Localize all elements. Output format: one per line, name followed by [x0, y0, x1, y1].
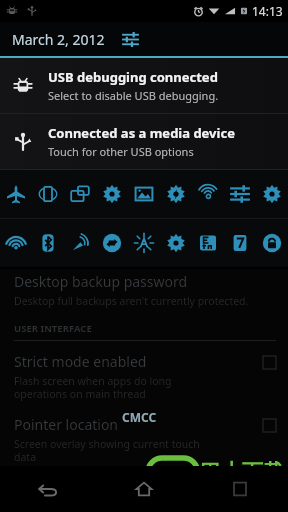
button[interactable]: Toggle 16	[192, 219, 224, 267]
button[interactable]: Toggle 10	[0, 219, 32, 267]
staticText: Flash screen when apps do long operation…	[14, 374, 172, 401]
button[interactable]: Strict mode checkbox	[263, 356, 276, 369]
button[interactable]: Quick settings	[117, 26, 143, 52]
button[interactable]: Toggle 4	[96, 170, 128, 218]
button[interactable]: Toggle 9	[256, 170, 288, 218]
staticText: Screen overlay showing current touch dat…	[14, 437, 200, 464]
staticText: CMCC	[122, 409, 157, 425]
button[interactable]: Toggle 2	[32, 170, 64, 218]
button[interactable]: Toggle 18	[256, 219, 288, 267]
staticText: Connected as a media device	[48, 124, 235, 142]
button[interactable]: Connected as a media device	[0, 114, 288, 169]
button[interactable]: Pointer location checkbox	[263, 419, 276, 432]
button[interactable]: USB debugging connected	[0, 58, 288, 113]
button[interactable]: Toggle 17	[224, 219, 256, 267]
staticText: USER INTERFACE	[14, 322, 92, 335]
staticText: USB debugging connected	[48, 68, 218, 86]
button[interactable]: Toggle 12	[64, 219, 96, 267]
staticText: www.11684.com	[187, 487, 284, 503]
staticText: 巴士下载	[200, 459, 284, 485]
button[interactable]: Toggle 7	[192, 170, 224, 218]
staticText: Strict mode enabled	[14, 352, 147, 371]
button[interactable]: Toggle 1	[0, 170, 32, 218]
button[interactable]: Toggle 15	[160, 219, 192, 267]
button[interactable]: Toggle 8	[224, 170, 256, 218]
staticText: Touch for other USB options	[48, 144, 194, 159]
staticText: Select to disable USB debugging.	[48, 88, 219, 103]
staticText: Pointer location	[14, 415, 119, 434]
staticText: Desktop backup password	[14, 272, 188, 291]
button[interactable]: Toggle 11	[32, 219, 64, 267]
button[interactable]: Home	[96, 466, 192, 512]
staticText: Desktop full backups aren't currently pr…	[14, 294, 249, 308]
button[interactable]: Toggle 14	[128, 219, 160, 267]
button[interactable]: Toggle 3	[64, 170, 96, 218]
staticText: March 2, 2012	[12, 30, 105, 49]
button[interactable]: Recents	[192, 466, 288, 512]
button[interactable]: Toggle 5	[128, 170, 160, 218]
button[interactable]: Toggle 6	[160, 170, 192, 218]
button[interactable]: Toggle 13	[96, 219, 128, 267]
button[interactable]: Back	[0, 466, 96, 512]
staticText: 14:13	[252, 3, 283, 19]
